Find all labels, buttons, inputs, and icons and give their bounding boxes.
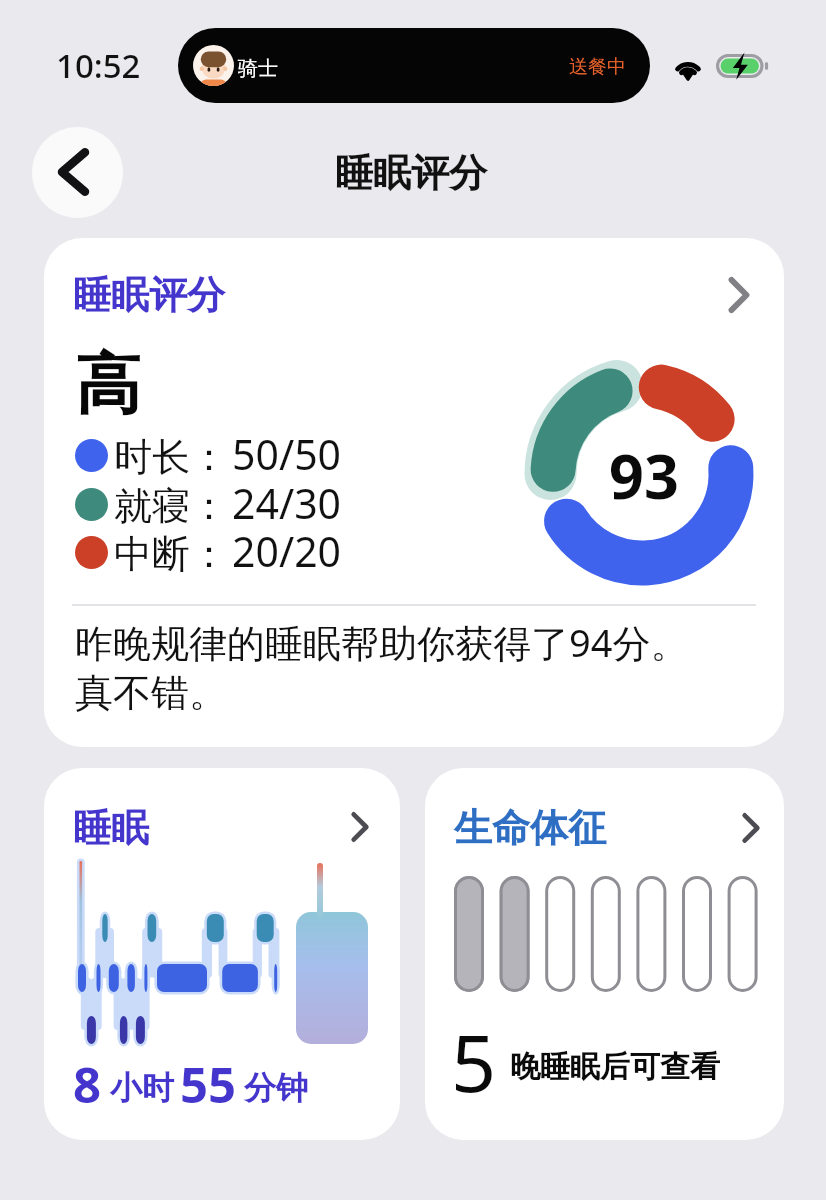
staticText: 骑士 <box>238 56 278 81</box>
staticText: 5 <box>451 1008 497 1116</box>
staticText: 24/30 <box>232 475 342 531</box>
staticText: 生命体征 <box>454 804 606 852</box>
staticText: 睡眠 <box>73 804 149 852</box>
staticText: 93 <box>609 434 679 517</box>
button[interactable]: 生命体征 <box>425 768 784 1140</box>
staticText: 高 <box>75 343 141 426</box>
staticText: 50/50 <box>232 426 342 482</box>
staticText: 20/20 <box>232 523 342 579</box>
staticText: 时长： <box>114 433 228 481</box>
staticText: 55 <box>180 1051 237 1118</box>
staticText: 10:52 <box>56 43 141 88</box>
staticText: 中断： <box>114 530 228 578</box>
staticText: 晚睡眠后可查看 <box>510 1048 720 1086</box>
staticText: 小时 <box>110 1068 174 1108</box>
staticText: 8 <box>73 1051 102 1118</box>
staticText: 就寝： <box>114 482 228 530</box>
button[interactable]: 睡眠 <box>44 768 400 1140</box>
button[interactable]: 睡眠评分 <box>44 238 784 747</box>
staticText: 昨晚规律的睡眠帮助你获得了94分。 真不错。 <box>75 616 689 718</box>
staticText: 睡眠评分 <box>73 271 225 319</box>
staticText: 睡眠评分 <box>335 149 487 197</box>
button[interactable]: Back <box>32 127 123 218</box>
staticText: 分钟 <box>244 1068 308 1108</box>
staticText: 送餐中 <box>569 55 626 79</box>
button[interactable]: 骑士 <box>178 28 650 103</box>
